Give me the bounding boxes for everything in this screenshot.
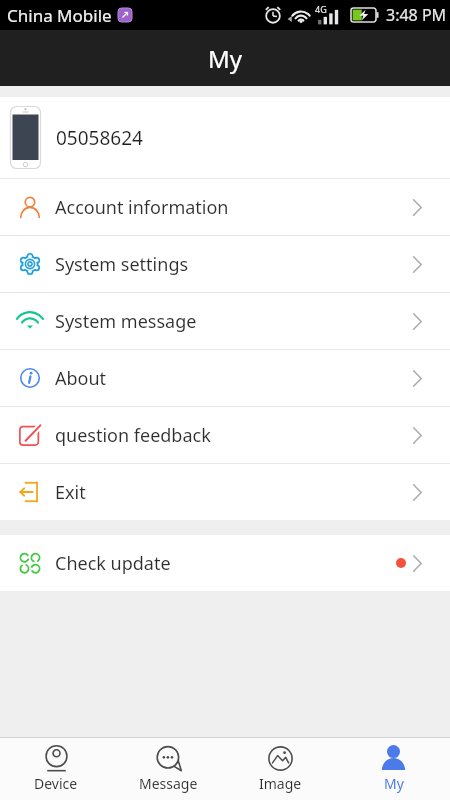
staticText: About xyxy=(55,366,107,391)
staticText: System settings xyxy=(55,252,189,277)
staticText: Image xyxy=(259,774,302,793)
button[interactable]: My xyxy=(337,738,450,800)
staticText: 05058624 xyxy=(56,125,143,151)
staticText: Account information xyxy=(55,195,229,220)
staticText: 3:48 PM xyxy=(386,4,447,26)
staticText: question feedback xyxy=(55,423,211,448)
button[interactable]: Message xyxy=(112,738,224,800)
button[interactable]: question feedback xyxy=(0,407,450,463)
staticText: Message xyxy=(139,774,198,793)
button[interactable]: Exit xyxy=(0,464,450,520)
staticText: Device xyxy=(34,774,78,793)
button[interactable]: Account information xyxy=(0,179,450,235)
staticText: System message xyxy=(55,309,197,334)
button[interactable]: About xyxy=(0,350,450,406)
button[interactable]: Check update xyxy=(0,535,450,591)
button[interactable]: Image xyxy=(224,738,337,800)
button[interactable]: System message xyxy=(0,293,450,349)
staticText: Exit xyxy=(55,480,86,505)
staticText: My xyxy=(208,42,243,75)
staticText: My xyxy=(384,774,404,793)
button[interactable]: 05058624 xyxy=(0,97,450,178)
staticText: 4G xyxy=(315,3,327,15)
staticText: Check update xyxy=(55,551,171,576)
staticText: China Mobile xyxy=(7,4,112,27)
button[interactable]: Device xyxy=(0,738,112,800)
button[interactable]: System settings xyxy=(0,236,450,292)
